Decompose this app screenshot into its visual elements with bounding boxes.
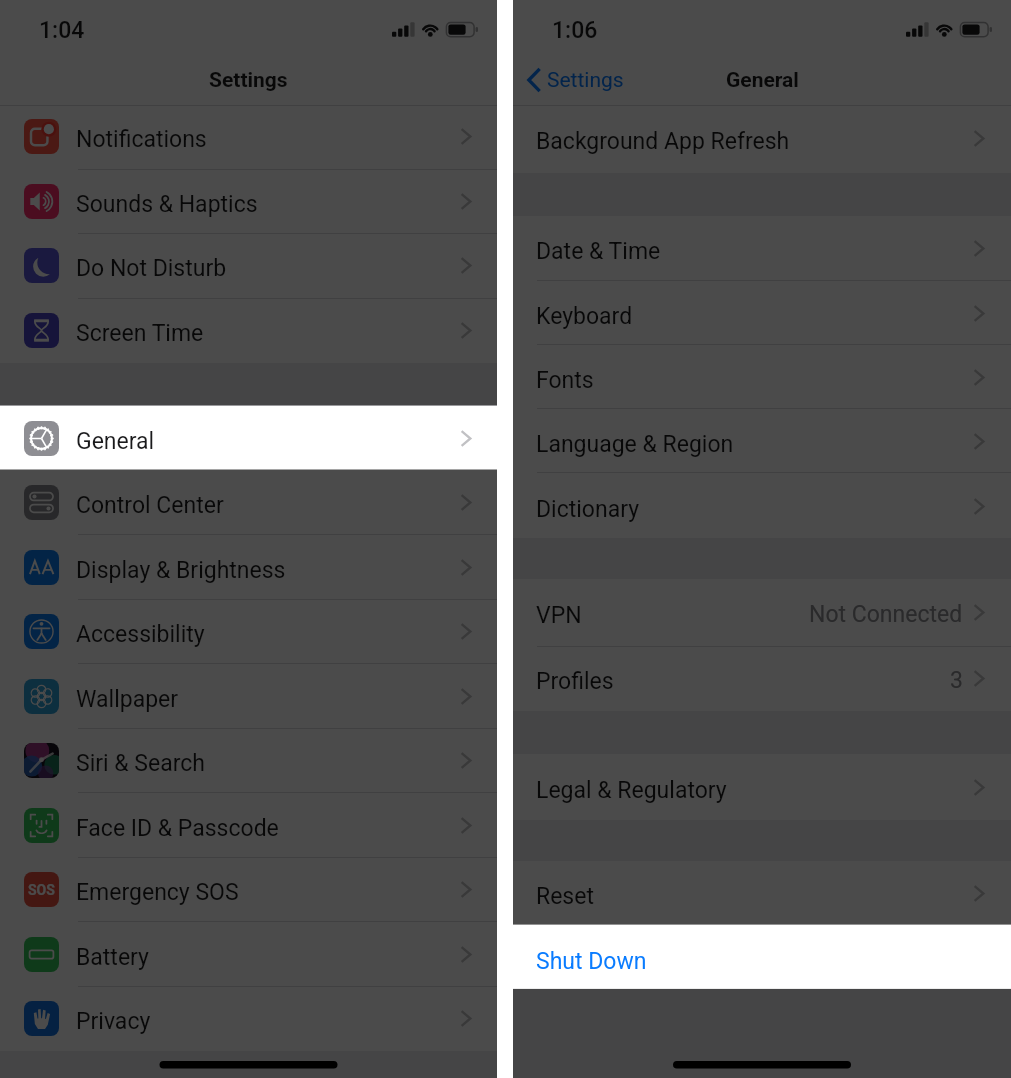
button[interactable]: Wallpaper: [0, 664, 497, 729]
staticText: Language & Region: [536, 431, 734, 458]
button[interactable]: Do Not Disturb: [0, 233, 497, 298]
staticText: General: [76, 428, 155, 455]
staticText: Not Connected: [809, 601, 963, 628]
staticText: 3: [950, 667, 963, 694]
staticText: Control Center: [76, 492, 224, 519]
staticText: Display & Brightness: [76, 557, 286, 584]
staticText: Emergency SOS: [76, 879, 239, 906]
button[interactable]: Fonts: [513, 345, 1011, 409]
button[interactable]: Dictionary: [513, 473, 1011, 539]
button[interactable]: Display & Brightness: [0, 535, 497, 600]
button[interactable]: Sounds & Haptics: [0, 169, 497, 234]
staticText: Date & Time: [536, 238, 661, 265]
staticText: Screen Time: [76, 320, 204, 347]
staticText: Legal & Regulatory: [536, 777, 727, 804]
staticText: General: [726, 68, 799, 93]
button[interactable]: Siri & Search: [0, 728, 497, 793]
staticText: Notifications: [76, 126, 207, 153]
button[interactable]: Shut Down: [513, 925, 1011, 989]
button[interactable]: Language & Region: [513, 409, 1011, 473]
staticText: Keyboard: [536, 303, 633, 330]
staticText: Battery: [76, 944, 149, 971]
button[interactable]: Battery: [0, 922, 497, 987]
staticText: Profiles: [536, 668, 614, 695]
button[interactable]: Profiles: [513, 646, 1011, 711]
button[interactable]: Screen Time: [0, 298, 497, 363]
staticText: VPN: [536, 602, 582, 629]
button[interactable]: Notifications: [0, 104, 497, 169]
button[interactable]: VPN: [513, 579, 1011, 646]
staticText: Do Not Disturb: [76, 255, 227, 282]
button[interactable]: General: [0, 406, 497, 471]
staticText: Background App Refresh: [536, 128, 790, 155]
button[interactable]: SOS: [0, 857, 497, 922]
staticText: 1:04: [39, 17, 85, 44]
button[interactable]: Keyboard: [513, 281, 1011, 345]
staticText: Settings: [547, 68, 624, 93]
staticText: Fonts: [536, 367, 594, 394]
staticText: SOS: [28, 882, 55, 898]
staticText: 1:06: [552, 17, 598, 44]
button[interactable]: Face ID & Passcode: [0, 793, 497, 858]
staticText: Dictionary: [536, 496, 640, 523]
staticText: Sounds & Haptics: [76, 191, 258, 218]
button[interactable]: Settings: [524, 56, 624, 104]
staticText: Face ID & Passcode: [76, 815, 279, 842]
staticText: Reset: [536, 883, 594, 910]
staticText: Accessibility: [76, 621, 205, 648]
staticText: Siri & Search: [76, 750, 206, 777]
staticText: Wallpaper: [76, 686, 179, 713]
button[interactable]: Background App Refresh: [513, 104, 1011, 173]
button[interactable]: Privacy: [0, 986, 497, 1051]
button[interactable]: Control Center: [0, 470, 497, 535]
button[interactable]: Date & Time: [513, 216, 1011, 280]
button[interactable]: Legal & Regulatory: [513, 754, 1011, 820]
staticText: Shut Down: [536, 948, 647, 975]
staticText: Settings: [209, 68, 288, 93]
button[interactable]: Reset: [513, 861, 1011, 925]
button[interactable]: Accessibility: [0, 599, 497, 664]
staticText: Privacy: [76, 1008, 151, 1035]
